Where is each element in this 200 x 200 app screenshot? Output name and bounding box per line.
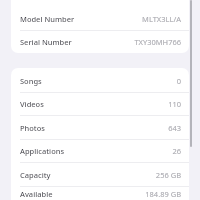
staticText: MLTX3LL/A xyxy=(142,14,181,24)
button[interactable]: Photos xyxy=(11,116,189,139)
staticText: TXY30MH766 xyxy=(134,37,181,47)
staticText: 26 xyxy=(172,146,181,156)
staticText: 256 GB xyxy=(155,170,181,180)
staticText: 184.89 GB xyxy=(145,189,181,199)
staticText: Capacity xyxy=(20,170,51,180)
staticText: Applications xyxy=(20,146,65,156)
button[interactable]: Applications xyxy=(11,140,189,162)
staticText: Photos xyxy=(20,123,45,133)
button[interactable]: Songs xyxy=(11,70,189,92)
staticText: Songs xyxy=(20,76,42,86)
button[interactable]: Model Number xyxy=(11,8,189,30)
staticText: 0 xyxy=(176,76,181,86)
button[interactable]: Videos xyxy=(11,93,189,115)
staticText: 110 xyxy=(168,99,181,109)
staticText: 643 xyxy=(168,123,181,133)
button[interactable]: Available xyxy=(11,187,189,200)
button[interactable]: Serial Number xyxy=(11,31,189,53)
button[interactable]: Capacity xyxy=(11,163,189,186)
staticText: Videos xyxy=(20,99,44,109)
staticText: Model Number xyxy=(20,14,75,24)
staticText: Available xyxy=(20,189,53,199)
staticText: Serial Number xyxy=(20,37,72,47)
